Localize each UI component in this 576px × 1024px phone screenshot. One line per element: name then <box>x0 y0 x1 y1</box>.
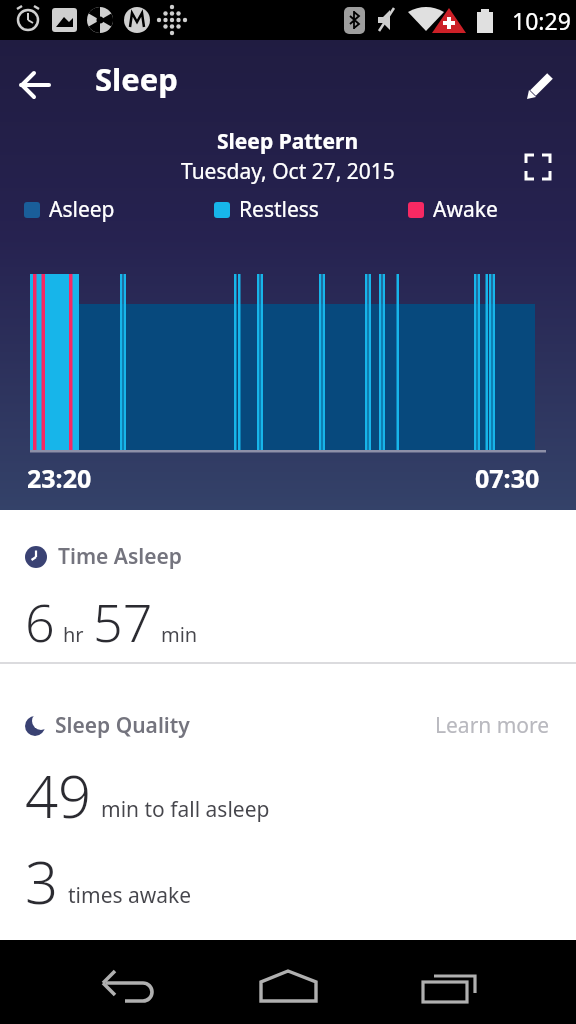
button[interactable]: Time Asleep <box>25 542 182 571</box>
staticText: 57 <box>93 586 153 657</box>
staticText: min <box>161 621 198 648</box>
button[interactable] <box>517 146 559 188</box>
button[interactable] <box>255 949 321 1015</box>
staticText: Awake <box>433 195 498 224</box>
staticText: 3 <box>25 842 59 921</box>
button[interactable]: Sleep Quality <box>25 711 190 740</box>
staticText: 07:30 <box>475 461 540 495</box>
staticText: times awake <box>68 881 192 910</box>
staticText: Restless <box>239 195 319 224</box>
button[interactable] <box>506 40 576 130</box>
button[interactable] <box>95 949 161 1015</box>
staticText: 49 <box>25 756 92 835</box>
staticText: hr <box>63 621 84 648</box>
button[interactable]: Learn more <box>435 711 550 740</box>
staticText: 23:20 <box>27 461 92 495</box>
staticText: 6 <box>25 586 55 657</box>
staticText: Time Asleep <box>58 542 182 571</box>
staticText: Asleep <box>49 195 115 224</box>
staticText: min to fall asleep <box>101 795 270 824</box>
staticText: Sleep <box>95 58 178 100</box>
staticText: Sleep Pattern <box>217 127 359 156</box>
button[interactable] <box>420 949 486 1015</box>
staticText: 10:29 <box>512 5 571 36</box>
staticText: Sleep Quality <box>55 711 190 740</box>
staticText: Tuesday, Oct 27, 2015 <box>181 157 395 186</box>
button[interactable] <box>0 40 70 130</box>
